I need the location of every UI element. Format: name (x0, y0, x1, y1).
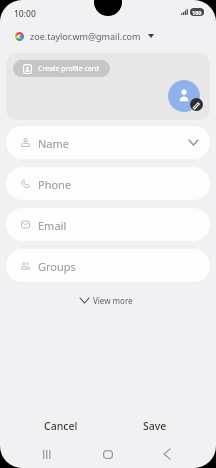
staticText: View more (93, 295, 133, 306)
staticText: zoe.taylor.wm@gmail.com (30, 30, 141, 42)
button[interactable]: Phone (6, 167, 210, 200)
button[interactable]: View more (80, 291, 133, 309)
button[interactable]: Name (6, 126, 210, 159)
button[interactable]: Groups (6, 249, 210, 282)
staticText: 100 (192, 9, 202, 16)
button[interactable]: Cancel (21, 411, 101, 440)
button[interactable]: Back (147, 440, 187, 468)
button[interactable]: zoe.taylor.wm@gmail.com (0, 26, 216, 46)
staticText: Cancel (44, 419, 78, 433)
staticText: Name (38, 136, 70, 151)
staticText: Create profile card (38, 64, 99, 74)
staticText: Save (143, 419, 167, 433)
staticText: Phone (38, 177, 72, 192)
button[interactable]: Home (88, 440, 128, 468)
button[interactable]: Save (115, 411, 195, 440)
button[interactable]: Email (6, 208, 210, 241)
button[interactable]: Edit photo (190, 98, 203, 111)
button[interactable]: Profile photo (168, 80, 200, 112)
staticText: Email (38, 218, 67, 233)
staticText: Groups (38, 259, 76, 274)
button[interactable]: Create profile card (13, 60, 110, 77)
button[interactable]: Recents (27, 440, 67, 468)
staticText: 10:00 (14, 8, 36, 20)
